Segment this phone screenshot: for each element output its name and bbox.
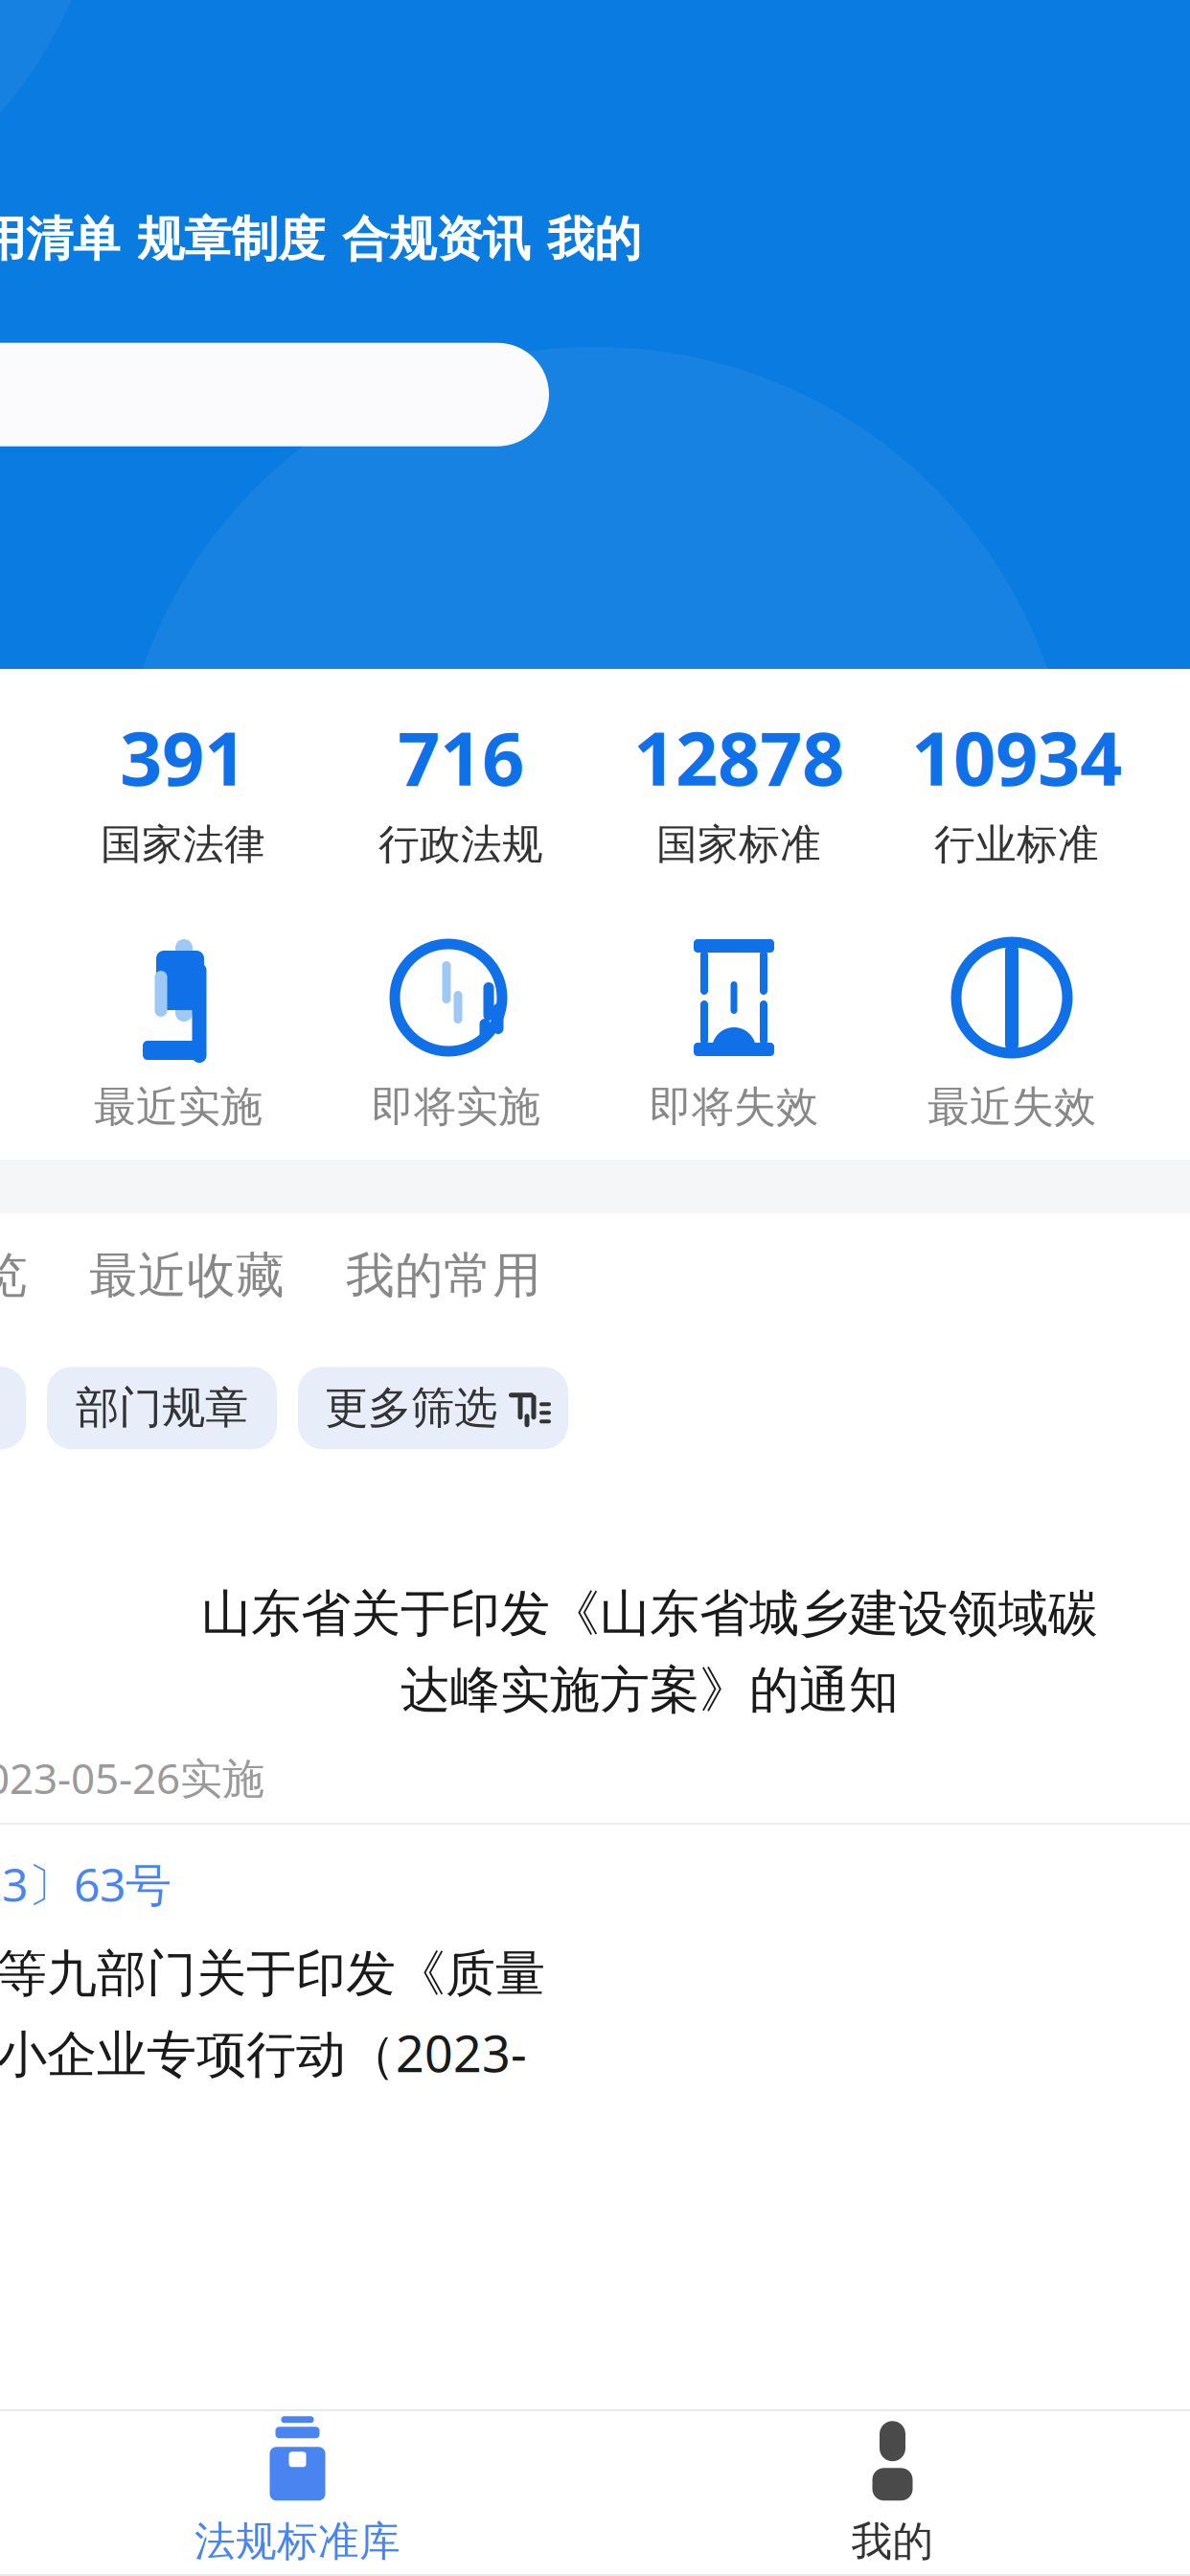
staticText: 国家标准 bbox=[656, 819, 821, 870]
staticText: 10934 bbox=[911, 708, 1122, 806]
staticText: 我的 bbox=[851, 2516, 934, 2567]
button[interactable]: 即将实施 bbox=[317, 935, 595, 1133]
button[interactable]: 我的 bbox=[595, 2411, 1190, 2574]
staticText: 最近失效 bbox=[927, 1081, 1096, 1133]
button[interactable]: 输入关键词 bbox=[0, 343, 549, 446]
button[interactable]: 最近实施 bbox=[39, 935, 317, 1133]
staticText: 我的常用 bbox=[346, 1246, 541, 1305]
staticText: 标准品牌赋值中小企业专项行动（2023- bbox=[0, 2020, 527, 2086]
button[interactable]: 12878 bbox=[600, 708, 878, 870]
button[interactable]: 最近失效 bbox=[873, 935, 1151, 1133]
button[interactable]: 规章制度 bbox=[128, 210, 333, 269]
staticText: 即将失效 bbox=[650, 1081, 818, 1133]
staticText: 391 bbox=[120, 708, 246, 806]
staticText: 国家法律 bbox=[101, 819, 265, 870]
staticText: 2023-05-26发布 2023-05-26实施 bbox=[0, 1750, 264, 1805]
staticText: 更多筛选 bbox=[325, 1381, 497, 1435]
button[interactable]: 文 bbox=[0, 1825, 1190, 2117]
button[interactable]: 391 bbox=[44, 708, 322, 870]
button[interactable]: 现行 bbox=[0, 1478, 1190, 1823]
staticText: 法规标准库 bbox=[195, 2516, 400, 2567]
staticText: 规章制度 bbox=[137, 210, 325, 269]
button[interactable]: 适用清单 bbox=[0, 210, 128, 269]
staticText: 12878 bbox=[633, 708, 844, 806]
staticText: 最近收藏 bbox=[89, 1246, 285, 1305]
staticText: 最近实施 bbox=[94, 1081, 263, 1133]
staticText: 716 bbox=[398, 708, 524, 806]
button[interactable]: 更多筛选 bbox=[298, 1367, 568, 1449]
button[interactable]: 10934 bbox=[878, 708, 1156, 870]
staticText: 最近浏览 bbox=[0, 1246, 28, 1305]
staticText: 适用清单 bbox=[0, 210, 120, 269]
staticText: 达峰实施方案》的通知 bbox=[400, 1660, 899, 1721]
staticText: 工信部联科〔2023〕63号 bbox=[0, 1853, 172, 1914]
button[interactable]: 我的常用 bbox=[315, 1246, 572, 1340]
staticText: 行业标准 bbox=[934, 819, 1099, 870]
staticText: 山东省关于印发《山东省城乡建设领域碳 bbox=[201, 1583, 1098, 1644]
staticText: 合规资讯 bbox=[342, 210, 530, 269]
staticText: 工业和信息化部等九部门关于印发《质量 bbox=[0, 1943, 545, 2004]
staticText: 我的 bbox=[547, 210, 641, 269]
button[interactable]: 最近浏览 bbox=[0, 1246, 58, 1340]
staticText: 部门规章 bbox=[76, 1381, 248, 1435]
button[interactable]: 我的 bbox=[538, 210, 650, 269]
staticText: 即将实施 bbox=[372, 1081, 540, 1133]
staticText: 行政法规 bbox=[378, 819, 543, 870]
button[interactable]: 即将失效 bbox=[595, 935, 873, 1133]
button[interactable]: 合规资讯 bbox=[333, 210, 538, 269]
button[interactable]: 716 bbox=[322, 708, 600, 870]
button[interactable]: 行政法规 bbox=[0, 1367, 26, 1449]
button[interactable]: 法规标准库 bbox=[0, 2411, 595, 2574]
button[interactable]: 最近收藏 bbox=[58, 1246, 315, 1340]
button[interactable]: 部门规章 bbox=[47, 1367, 277, 1449]
